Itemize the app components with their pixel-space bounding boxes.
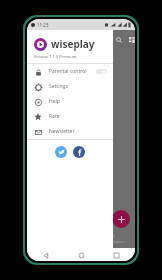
staticText: wiseplay: [51, 37, 95, 51]
button[interactable]: Parental control: [27, 64, 113, 79]
staticText: 11:23: [37, 22, 49, 28]
staticText: E-Browser: [109, 240, 125, 244]
staticText: Newsletter: [49, 128, 75, 135]
staticText: Settings: [49, 83, 69, 90]
button[interactable]: Twitter: [55, 146, 67, 158]
button[interactable]: Search: [114, 35, 123, 44]
button[interactable]: Home: [76, 250, 86, 260]
button[interactable]: E-Browser: [109, 234, 125, 244]
button[interactable]: Add: [112, 210, 130, 228]
button[interactable]: Facebook: [73, 146, 85, 158]
button[interactable]: Rate: [27, 109, 113, 124]
staticText: Rate: [49, 113, 60, 120]
staticText: Help: [49, 98, 60, 105]
button[interactable]: Newsletter: [27, 124, 113, 139]
button[interactable]: Help: [27, 94, 113, 109]
button[interactable]: Back: [41, 250, 51, 260]
staticText: Version 7.1.0 Premium: [34, 54, 77, 59]
staticText: Parental control: [49, 68, 87, 75]
button[interactable]: Settings: [27, 79, 113, 94]
button[interactable]: Recents: [111, 250, 121, 260]
button[interactable]: Grid view: [129, 35, 135, 44]
